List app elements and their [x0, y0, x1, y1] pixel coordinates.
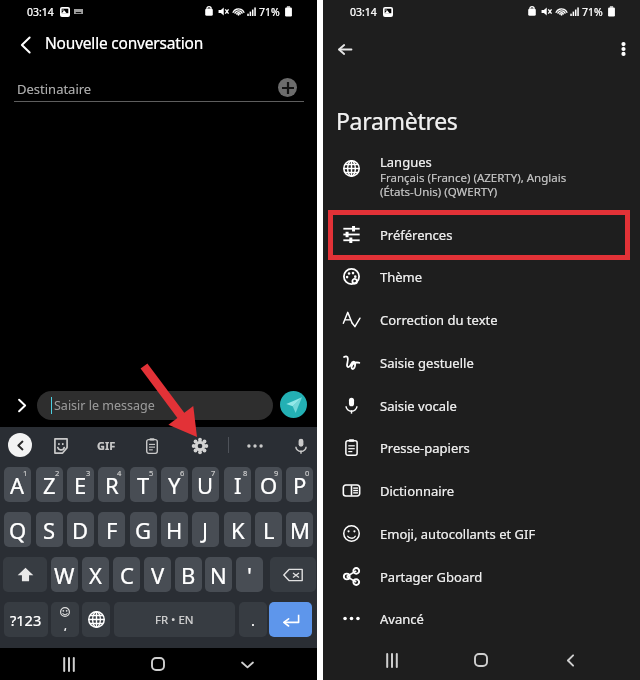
button[interactable]: Home	[141, 648, 175, 680]
button[interactable]: S	[36, 512, 63, 547]
staticText: 6	[180, 468, 185, 478]
button[interactable]: Recents	[52, 648, 86, 680]
button[interactable]: E	[67, 467, 94, 502]
staticText: Saisir le message	[54, 397, 155, 414]
button[interactable]: M	[286, 512, 313, 547]
button[interactable]: K	[224, 512, 251, 547]
staticText: 7	[211, 468, 216, 478]
button[interactable]: N	[205, 557, 232, 592]
staticText: ?123	[10, 610, 42, 630]
button[interactable]: Expand toolbar	[8, 390, 34, 420]
staticText: G	[135, 515, 152, 545]
button[interactable]: P	[286, 467, 313, 502]
button[interactable]: H	[161, 512, 188, 547]
button[interactable]: W	[51, 557, 78, 592]
button[interactable]: Back	[328, 32, 362, 66]
button[interactable]: Z	[36, 467, 63, 502]
button[interactable]: X	[82, 557, 109, 592]
staticText: S	[43, 515, 56, 545]
button[interactable]: V	[144, 557, 171, 592]
button[interactable]: Q	[4, 512, 31, 547]
button[interactable]: R	[98, 467, 125, 502]
button[interactable]: More	[242, 433, 268, 459]
staticText: Destinataire	[17, 80, 92, 98]
button[interactable]: C	[113, 557, 140, 592]
staticText: I	[234, 470, 242, 500]
button[interactable]: L	[255, 512, 282, 547]
staticText: 0	[305, 468, 310, 478]
button[interactable]: GIF	[92, 433, 120, 457]
button[interactable]: Saisir le message	[37, 391, 273, 420]
button[interactable]: More options	[609, 35, 637, 63]
button[interactable]: F	[98, 512, 125, 547]
button[interactable]: A	[4, 467, 31, 502]
staticText: ,	[64, 618, 67, 633]
staticText: 1	[23, 468, 28, 478]
staticText: B	[181, 560, 196, 590]
button[interactable]: Préférences	[323, 213, 640, 256]
button[interactable]: G	[130, 512, 157, 547]
button[interactable]: Recents	[375, 640, 409, 680]
button[interactable]: B	[175, 557, 202, 592]
staticText: K	[231, 515, 245, 545]
button[interactable]: Saisie vocale	[323, 384, 640, 427]
staticText: Z	[43, 470, 56, 500]
button[interactable]: I	[224, 467, 251, 502]
staticText: L	[263, 515, 275, 545]
button[interactable]: Saisie gestuelle	[323, 341, 640, 384]
staticText: U	[197, 470, 214, 500]
button[interactable]: Settings	[187, 433, 213, 459]
button[interactable]: J	[192, 512, 219, 547]
staticText: Nouvelle conversation	[45, 32, 204, 53]
staticText: 03:14	[27, 5, 54, 19]
staticText: 3	[86, 468, 91, 478]
button[interactable]: Home	[464, 640, 498, 680]
button[interactable]: Change language	[82, 602, 110, 637]
button[interactable]: Hide keyboard	[230, 648, 264, 680]
button[interactable]: Shift	[3, 557, 47, 592]
staticText: Y	[168, 470, 181, 500]
staticText: T	[137, 470, 150, 500]
button[interactable]: Send	[280, 391, 307, 418]
staticText: P	[293, 470, 307, 500]
button[interactable]: O	[255, 467, 282, 502]
staticText: Saisie gestuelle	[380, 354, 474, 372]
button[interactable]: Emoji and comma	[51, 602, 79, 637]
staticText: Avancé	[380, 610, 424, 628]
button[interactable]: Correction du texte	[323, 298, 640, 341]
staticText: 8	[243, 468, 248, 478]
staticText: H	[166, 515, 183, 545]
button[interactable]: Emoji, autocollants et GIF	[323, 512, 640, 555]
button[interactable]: Thème	[323, 255, 640, 298]
staticText: Correction du texte	[380, 311, 498, 329]
staticText: Emoji, autocollants et GIF	[380, 525, 536, 543]
button[interactable]: Presse-papiers	[323, 426, 640, 469]
button[interactable]: Y	[161, 467, 188, 502]
staticText: 2	[55, 468, 60, 478]
button[interactable]: Back	[553, 640, 587, 680]
staticText: C	[120, 560, 134, 590]
button[interactable]: Enter	[269, 602, 312, 637]
button[interactable]: FR • EN	[114, 602, 235, 637]
button[interactable]: Partager Gboard	[323, 555, 640, 598]
button[interactable]: Collapse toolbar	[8, 433, 32, 457]
button[interactable]: '	[236, 557, 263, 592]
button[interactable]: .	[239, 602, 267, 637]
staticText: 4	[117, 468, 122, 478]
button[interactable]: Stickers	[48, 433, 74, 459]
button[interactable]: T	[130, 467, 157, 502]
button[interactable]: Avancé	[323, 597, 640, 640]
staticText: Français (France) (AZERTY), Anglais (Éta…	[380, 170, 567, 199]
button[interactable]: U	[192, 467, 219, 502]
button[interactable]: Add recipient	[278, 78, 297, 97]
button[interactable]: Voice input	[288, 433, 314, 459]
staticText: Q	[9, 515, 27, 545]
button[interactable]: Back	[9, 29, 41, 61]
button[interactable]: D	[67, 512, 94, 547]
button[interactable]: Dictionnaire	[323, 469, 640, 512]
button[interactable]: Clipboard	[139, 433, 165, 459]
button[interactable]: Backspace	[270, 557, 316, 592]
staticText: '	[247, 560, 252, 590]
button[interactable]: ?123	[4, 602, 48, 637]
staticText: N	[210, 560, 227, 590]
